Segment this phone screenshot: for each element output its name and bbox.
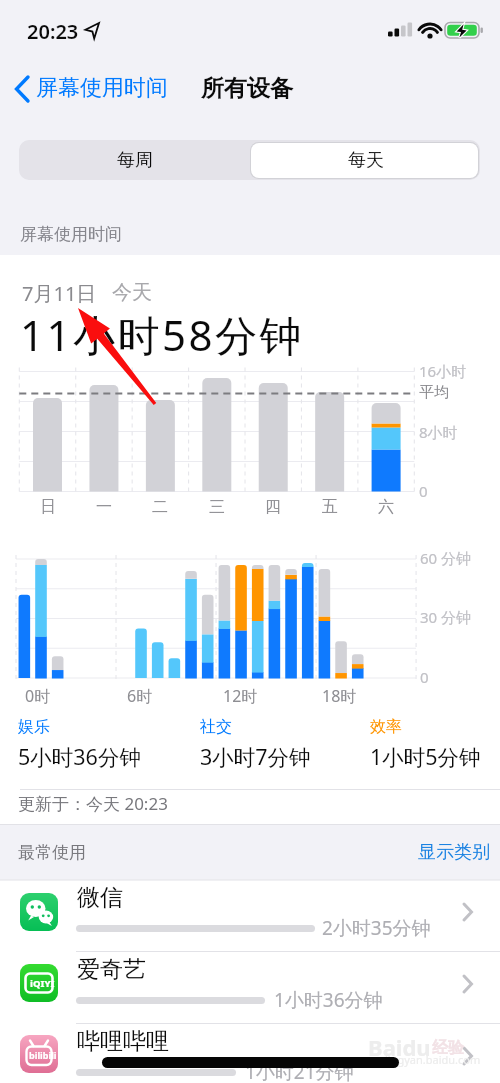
staticText: 一	[96, 497, 112, 517]
staticText: 日	[40, 497, 56, 517]
staticText: 平均	[419, 383, 449, 402]
button[interactable]: 每天	[250, 141, 481, 180]
staticText: 18时	[322, 685, 357, 707]
staticText: 经验	[432, 1038, 464, 1058]
staticText: 最常使用	[18, 842, 86, 863]
staticText: 60 分钟	[420, 548, 472, 568]
staticText: 显示类别	[418, 841, 490, 864]
staticText: 3小时7分钟	[200, 742, 311, 771]
staticText: 五	[322, 497, 338, 517]
staticText: 0	[419, 481, 428, 501]
staticText: 6时	[127, 685, 153, 707]
staticText: 六	[378, 497, 394, 517]
staticText: 屏幕使用时间	[36, 74, 168, 102]
staticText: 三	[209, 497, 225, 517]
staticText: 11小时58分钟	[20, 306, 305, 363]
staticText: 2小时35分钟	[322, 915, 431, 941]
staticText: 16小时	[419, 361, 467, 381]
staticText: 1小时21分钟	[245, 1059, 354, 1083]
staticText: 微信	[77, 883, 123, 912]
staticText: 0	[420, 667, 429, 687]
staticText: 7月11日	[22, 280, 97, 307]
staticText: jingyan.baidu.com	[385, 1052, 481, 1067]
staticText: 四	[265, 497, 281, 517]
staticText: 0时	[25, 685, 51, 707]
staticText: 5小时36分钟	[18, 742, 141, 771]
button[interactable]	[0, 952, 500, 1024]
button[interactable]: 每周	[19, 141, 250, 180]
staticText: 每周	[117, 149, 153, 172]
staticText: 娱乐	[18, 717, 50, 737]
staticText: 每天	[348, 149, 384, 172]
button[interactable]	[0, 64, 180, 114]
staticText: 1小时5分钟	[370, 742, 481, 771]
staticText: 12时	[223, 685, 258, 707]
staticText: iQIYI	[30, 977, 55, 990]
staticText: 20:23	[27, 18, 79, 45]
staticText: 哔哩哔哩	[77, 1027, 169, 1056]
staticText: 屏幕使用时间	[20, 224, 122, 245]
staticText: 8小时	[419, 422, 458, 442]
staticText: 30 分钟	[420, 607, 472, 627]
staticText: Baidu	[368, 1032, 431, 1062]
staticText: 效率	[370, 717, 402, 737]
button[interactable]	[0, 1024, 500, 1083]
staticText: 1小时36分钟	[274, 987, 383, 1013]
staticText: bilibili	[29, 1049, 57, 1061]
staticText: 社交	[200, 717, 232, 737]
button[interactable]: 显示类别	[300, 840, 490, 864]
staticText: 今天	[112, 280, 152, 305]
staticText: 爱奇艺	[77, 955, 146, 984]
staticText: 二	[152, 497, 168, 517]
button[interactable]	[0, 880, 500, 952]
staticText: 更新于：今天 20:23	[18, 792, 168, 815]
staticText: 所有设备	[201, 74, 293, 103]
